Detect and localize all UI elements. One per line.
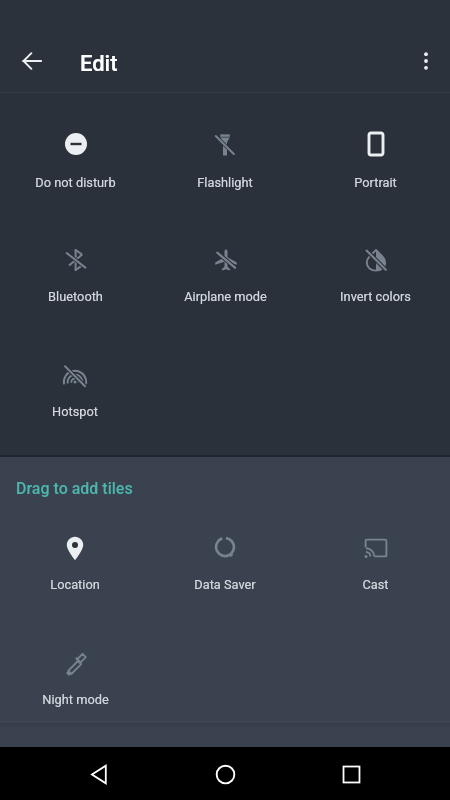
button[interactable]: Cast — [300, 502, 450, 596]
staticText: Hotspot — [52, 404, 98, 419]
staticText: Do not disturb — [35, 175, 116, 190]
staticText: Drag to add tiles — [16, 479, 133, 498]
button[interactable]: Data Saver — [150, 502, 300, 596]
button[interactable]: Back — [8, 37, 56, 85]
button[interactable]: More options — [402, 37, 450, 85]
staticText: Bluetooth — [48, 289, 103, 304]
button[interactable]: Home — [201, 750, 249, 798]
staticText: Cast — [362, 577, 389, 592]
staticText: Portrait — [354, 175, 397, 190]
staticText: Flashlight — [197, 175, 253, 190]
staticText: Data Saver — [194, 577, 256, 592]
button[interactable]: Do not disturb — [0, 100, 150, 194]
staticText: Night mode — [42, 692, 109, 707]
staticText: Airplane mode — [184, 289, 267, 304]
button[interactable]: Location — [0, 502, 150, 596]
button[interactable]: Recents — [327, 750, 375, 798]
button[interactable]: Night mode — [0, 617, 150, 711]
button[interactable]: Flashlight — [150, 100, 300, 194]
button[interactable]: Hotspot — [0, 329, 150, 423]
button[interactable]: Portrait — [300, 100, 450, 194]
staticText: Location — [50, 577, 100, 592]
button[interactable]: Back — [75, 750, 123, 798]
staticText: Edit — [80, 51, 118, 77]
staticText: Invert colors — [340, 289, 411, 304]
button[interactable]: Bluetooth — [0, 214, 150, 308]
button[interactable]: Airplane mode — [150, 214, 300, 308]
button[interactable]: Invert colors — [300, 214, 450, 308]
